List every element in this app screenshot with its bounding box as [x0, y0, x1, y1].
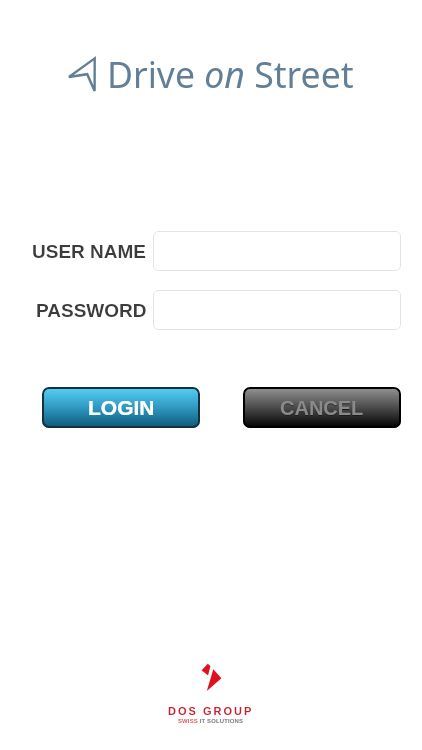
staticText: CANCEL: [280, 397, 364, 419]
staticText: SWISS IT SOLUTIONS: [178, 718, 244, 725]
staticText: LOGIN: [88, 396, 155, 419]
staticText: DOS GROUP: [168, 705, 254, 717]
button[interactable]: PASSWORD: [153, 290, 401, 330]
staticText: CANCEL: [280, 398, 364, 420]
button[interactable]: USER NAME: [153, 231, 401, 271]
staticText: USER NAME: [32, 241, 147, 262]
button[interactable]: LOGIN: [42, 387, 200, 428]
staticText: Drive on Street: [107, 50, 354, 98]
button[interactable]: CANCEL: [243, 387, 401, 428]
staticText: PASSWORD: [36, 300, 147, 321]
